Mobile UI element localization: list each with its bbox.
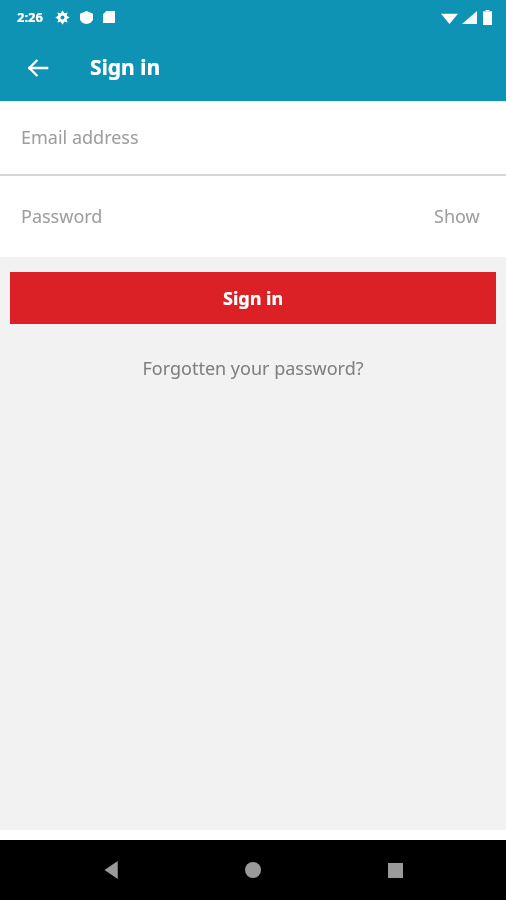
button[interactable]: Home: [223, 840, 283, 900]
staticText: Sign in: [223, 286, 284, 311]
button[interactable]: Back: [14, 44, 62, 92]
staticText: 2:26: [17, 8, 43, 26]
button[interactable]: Password: [0, 176, 506, 257]
button[interactable]: Recent apps: [365, 840, 425, 900]
staticText: Password: [21, 204, 103, 229]
button[interactable]: Email address: [0, 101, 506, 174]
staticText: Forgotten your password?: [142, 356, 364, 381]
button[interactable]: Back: [82, 840, 142, 900]
staticText: Show: [434, 204, 480, 229]
staticText: Email address: [21, 125, 139, 150]
button[interactable]: Show: [432, 198, 482, 235]
staticText: Sign in: [90, 53, 161, 82]
button[interactable]: Sign in: [10, 272, 496, 324]
button[interactable]: Forgotten your password?: [130, 350, 376, 387]
